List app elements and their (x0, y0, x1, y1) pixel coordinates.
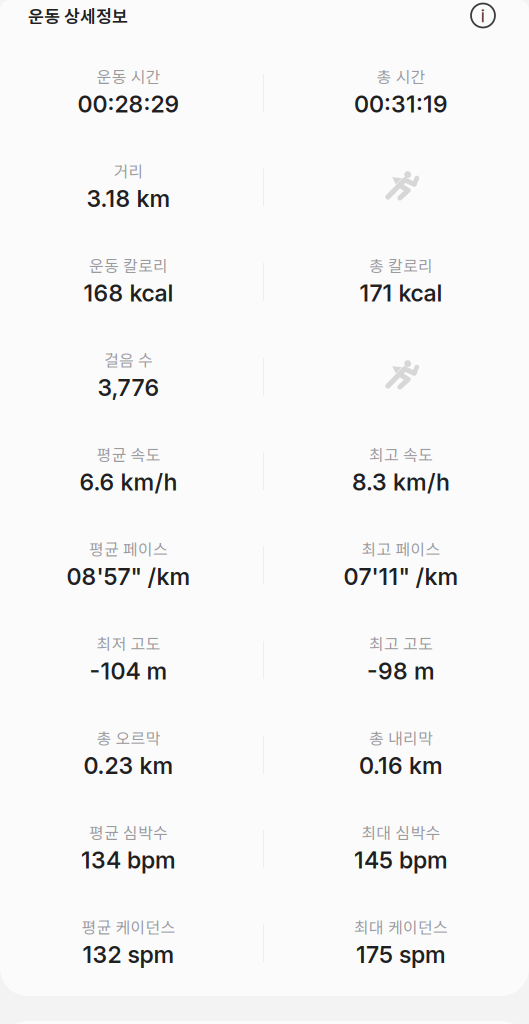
staticText: 00:31:19 (354, 90, 448, 118)
staticText: 평균 심박수 (89, 820, 168, 844)
staticText: 0.16 km (359, 751, 443, 780)
staticText: 최대 심박수 (361, 820, 440, 844)
staticText: 175 spm (356, 940, 446, 969)
staticText: 총 칼로리 (369, 253, 433, 277)
staticText: 8.3 km/h (352, 468, 450, 496)
button[interactable]: 정보 (463, 0, 503, 35)
staticText: 총 내리막 (369, 726, 433, 749)
staticText: 평균 속도 (96, 442, 160, 466)
staticText: 145 bpm (354, 846, 448, 874)
staticText: i (480, 4, 485, 27)
staticText: -104 m (89, 657, 167, 685)
staticText: 168 kcal (83, 279, 173, 307)
staticText: 132 spm (82, 940, 174, 969)
staticText: 총 오르막 (96, 726, 160, 749)
staticText: 6.6 km/h (79, 468, 177, 496)
staticText: 0.23 km (83, 751, 173, 780)
staticText: 평균 페이스 (89, 537, 168, 560)
staticText: 걸음 수 (104, 348, 153, 371)
staticText: 08'57" /km (66, 562, 190, 591)
staticText: 운동 상세정보 (28, 3, 128, 28)
staticText: 최대 케이던스 (354, 915, 448, 938)
staticText: 134 bpm (81, 846, 176, 874)
staticText: 3.18 km (86, 184, 170, 213)
staticText: 171 kcal (359, 279, 442, 307)
staticText: 운동 칼로리 (89, 253, 168, 277)
staticText: 00:28:29 (77, 90, 179, 118)
staticText: -98 m (367, 657, 435, 685)
staticText: 거리 (113, 159, 143, 182)
staticText: 총 시간 (376, 64, 425, 88)
staticText: 최저 고도 (96, 631, 160, 655)
staticText: 07'11" /km (343, 562, 458, 591)
staticText: 최고 페이스 (361, 537, 440, 560)
staticText: 3,776 (97, 373, 159, 402)
staticText: 운동 시간 (96, 64, 160, 88)
staticText: 평균 케이던스 (81, 915, 175, 938)
staticText: 최고 고도 (369, 631, 433, 655)
staticText: 최고 속도 (369, 442, 433, 466)
